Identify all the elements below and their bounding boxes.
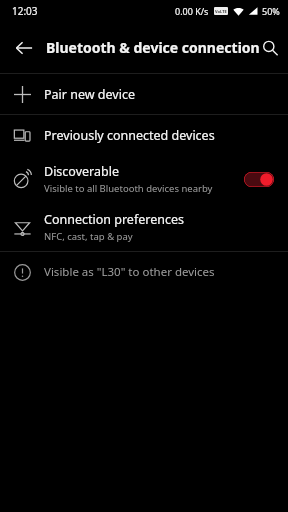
button[interactable]: Back bbox=[6, 30, 42, 66]
staticText: Previously connected devices bbox=[44, 127, 215, 144]
button[interactable]: Connection preferences bbox=[0, 203, 288, 251]
staticText: Bluetooth & device connection bbox=[46, 38, 260, 57]
button[interactable]: Discoverable toggle bbox=[244, 172, 274, 187]
staticText: Pair new device bbox=[44, 86, 135, 103]
button[interactable]: Previously connected devices bbox=[0, 115, 288, 155]
button[interactable]: Discoverable bbox=[0, 155, 288, 203]
staticText: Visible as "L30" to other devices bbox=[44, 264, 215, 280]
button[interactable]: Visible as "L30" to other devices bbox=[0, 252, 288, 292]
staticText: 0.00 K/s bbox=[175, 5, 209, 17]
button[interactable]: Search bbox=[260, 31, 280, 65]
staticText: VoLTE bbox=[215, 9, 227, 14]
staticText: Connection preferences bbox=[44, 211, 184, 228]
staticText: Discoverable bbox=[44, 163, 119, 180]
staticText: Visible to all Bluetooth devices nearby bbox=[44, 182, 213, 195]
staticText: 12:03 bbox=[12, 4, 38, 18]
staticText: NFC, cast, tap & pay bbox=[44, 230, 133, 243]
button[interactable]: Pair new device bbox=[0, 74, 288, 114]
staticText: 50% bbox=[262, 5, 280, 17]
